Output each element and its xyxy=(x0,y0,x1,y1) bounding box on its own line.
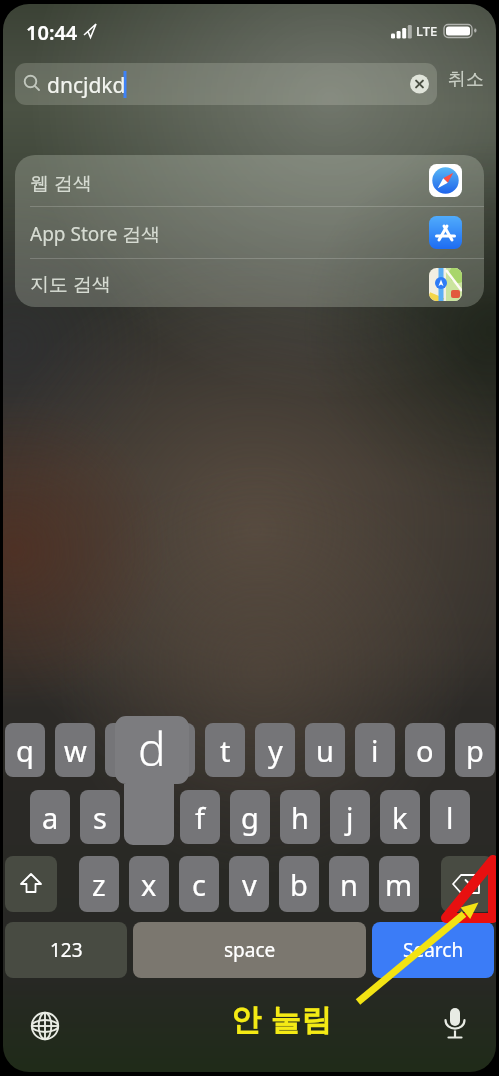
button[interactable]: 취소 xyxy=(448,68,492,98)
button[interactable]: s xyxy=(80,790,120,844)
button[interactable]: 지도 검색 xyxy=(15,258,484,307)
staticText: k xyxy=(392,798,408,837)
staticText: App Store 검색 xyxy=(30,221,161,247)
button[interactable]: a xyxy=(30,790,70,844)
button[interactable]: e xyxy=(105,723,145,777)
button[interactable]: x xyxy=(129,856,169,912)
button[interactable]: 123 xyxy=(5,922,127,978)
button[interactable]: m xyxy=(379,856,419,912)
staticText: z xyxy=(92,865,106,904)
staticText: t xyxy=(220,731,231,770)
button[interactable]: b xyxy=(279,856,319,912)
button[interactable]: k xyxy=(380,790,420,844)
staticText: Search xyxy=(403,937,464,963)
staticText: a xyxy=(42,798,59,837)
button[interactable]: g xyxy=(230,790,270,844)
button[interactable]: u xyxy=(305,723,345,777)
button[interactable]: z xyxy=(79,856,119,912)
staticText: 웹 검색 xyxy=(30,170,92,196)
staticText: space xyxy=(224,937,276,963)
button[interactable]: 웹 검색 xyxy=(15,155,484,206)
button[interactable]: h xyxy=(280,790,320,844)
staticText: 취소 xyxy=(448,68,484,91)
button[interactable] xyxy=(22,1003,68,1049)
button[interactable]: w xyxy=(55,723,95,777)
staticText: p xyxy=(466,731,484,770)
button[interactable]: v xyxy=(229,856,269,912)
button[interactable]: j xyxy=(330,790,370,844)
button[interactable]: l xyxy=(430,790,470,844)
staticText: g xyxy=(241,798,259,837)
staticText: y xyxy=(268,731,283,770)
staticText: w xyxy=(64,731,87,770)
button[interactable] xyxy=(15,63,437,105)
staticText: d xyxy=(138,717,166,780)
staticText: n xyxy=(340,865,358,904)
button[interactable]: r xyxy=(155,723,195,777)
staticText: 123 xyxy=(50,937,83,963)
staticText: h xyxy=(291,798,309,837)
button[interactable]: Search xyxy=(372,922,494,978)
staticText: u xyxy=(316,731,334,770)
button[interactable]: q xyxy=(5,723,45,777)
staticText: m xyxy=(385,865,413,904)
button[interactable] xyxy=(441,856,493,912)
staticText: 지도 검색 xyxy=(30,271,111,297)
button[interactable]: f xyxy=(180,790,220,844)
staticText: s xyxy=(93,798,107,837)
button[interactable] xyxy=(432,1002,478,1048)
staticText: 안 눌림 xyxy=(231,998,333,1039)
button[interactable]: y xyxy=(255,723,295,777)
staticText: v xyxy=(242,865,257,904)
button[interactable]: App Store 검색 xyxy=(15,206,484,258)
button[interactable]: i xyxy=(355,723,395,777)
staticText: l xyxy=(446,798,454,837)
staticText: dncjdkd xyxy=(47,71,126,100)
staticText: i xyxy=(371,731,379,770)
button[interactable]: space xyxy=(133,922,366,978)
button[interactable]: n xyxy=(329,856,369,912)
staticText: 10:44 xyxy=(26,19,78,46)
staticText: j xyxy=(346,798,354,837)
button[interactable] xyxy=(5,856,57,912)
staticText: x xyxy=(141,865,157,904)
button[interactable]: c xyxy=(179,856,219,912)
button[interactable]: p xyxy=(455,723,495,777)
staticText: c xyxy=(192,865,206,904)
staticText: o xyxy=(416,731,434,770)
staticText: b xyxy=(290,865,308,904)
staticText: LTE xyxy=(416,22,438,40)
staticText: q xyxy=(16,731,34,770)
button[interactable]: o xyxy=(405,723,445,777)
button[interactable]: t xyxy=(205,723,245,777)
staticText: f xyxy=(195,798,205,837)
